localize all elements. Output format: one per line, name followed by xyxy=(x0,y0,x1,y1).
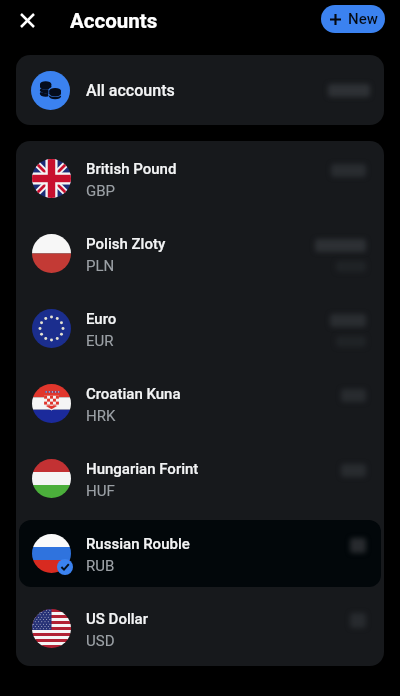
button[interactable]: All accounts xyxy=(16,55,384,125)
staticText: Polish Zloty xyxy=(86,235,166,253)
button[interactable]: Croatian Kuna xyxy=(19,370,381,437)
button[interactable]: New xyxy=(321,5,385,33)
staticText: HUF xyxy=(86,482,115,500)
button[interactable]: Hungarian Forint xyxy=(19,445,381,512)
staticText: Hungarian Forint xyxy=(86,460,199,478)
button[interactable]: Russian Rouble xyxy=(19,520,381,587)
staticText: New xyxy=(348,10,378,28)
staticText: GBP xyxy=(86,182,116,200)
staticText: Euro xyxy=(86,310,117,328)
staticText: British Pound xyxy=(86,160,177,178)
button[interactable]: Euro xyxy=(19,295,381,362)
staticText: HRK xyxy=(86,407,116,425)
staticText: RUB xyxy=(86,557,115,575)
staticText: Russian Rouble xyxy=(86,535,190,553)
button[interactable]: British Pound xyxy=(19,145,381,212)
staticText: Accounts xyxy=(70,9,158,33)
staticText: EUR xyxy=(86,332,114,350)
staticText: US Dollar xyxy=(86,610,148,628)
staticText: Croatian Kuna xyxy=(86,385,181,403)
staticText: USD xyxy=(86,632,115,650)
button[interactable]: Polish Zloty xyxy=(19,220,381,287)
staticText: PLN xyxy=(86,257,115,275)
button[interactable]: Close xyxy=(13,6,41,34)
button[interactable]: US Dollar xyxy=(19,595,381,662)
staticText: All accounts xyxy=(86,81,175,100)
